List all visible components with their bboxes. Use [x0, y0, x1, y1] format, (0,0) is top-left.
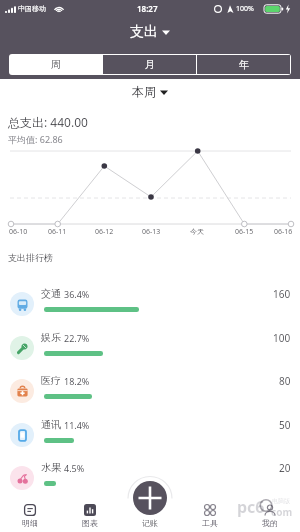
- staticText: 周: [51, 58, 61, 71]
- staticText: 4.5%: [64, 462, 85, 474]
- staticText: com: [271, 505, 293, 519]
- button[interactable]: 月: [103, 55, 196, 74]
- staticText: 11.4%: [64, 419, 90, 431]
- staticText: 水果: [41, 461, 61, 474]
- button[interactable]: 医疗: [0, 370, 300, 413]
- staticText: 06-12: [95, 227, 114, 237]
- staticText: 18.2%: [64, 375, 90, 387]
- staticText: 记账: [142, 518, 158, 528]
- staticText: 80: [279, 374, 291, 388]
- button[interactable]: 我的: [250, 498, 290, 530]
- staticText: 18:27: [137, 3, 158, 14]
- staticText: 月: [145, 58, 155, 71]
- staticText: 工具: [202, 518, 218, 528]
- staticText: 支出: [130, 23, 158, 41]
- button[interactable]: 水果: [0, 457, 300, 500]
- staticText: 20: [279, 461, 291, 475]
- staticText: 06-11: [48, 227, 67, 237]
- staticText: 100: [273, 331, 291, 345]
- button[interactable]: 年: [197, 55, 290, 74]
- staticText: 100%: [236, 4, 254, 14]
- button[interactable]: 工具: [190, 498, 230, 530]
- staticText: 娱乐: [41, 331, 61, 344]
- button[interactable]: 娱乐: [0, 327, 300, 370]
- staticText: pc6: [237, 496, 265, 518]
- staticText: 36.4%: [64, 288, 90, 300]
- staticText: 医疗: [41, 374, 61, 387]
- staticText: 06-16: [274, 227, 293, 237]
- staticText: 图表: [82, 518, 98, 528]
- staticText: 中国移动: [18, 4, 46, 13]
- staticText: 06-15: [235, 227, 254, 237]
- button[interactable]: 周: [10, 55, 102, 74]
- staticText: 今天: [190, 227, 204, 236]
- staticText: 总支出: 440.00: [8, 114, 88, 130]
- staticText: 电脑版: [272, 497, 290, 505]
- button[interactable]: 交通: [0, 283, 300, 326]
- staticText: 50: [279, 418, 291, 432]
- staticText: 本周: [132, 84, 156, 99]
- staticText: 22.7%: [64, 332, 90, 344]
- staticText: 年: [239, 58, 249, 71]
- staticText: 交通: [41, 287, 61, 300]
- staticText: 平均值: 62.86: [8, 133, 63, 145]
- staticText: 160: [273, 287, 291, 301]
- staticText: 我的: [262, 518, 278, 528]
- button[interactable]: [133, 481, 167, 515]
- button[interactable]: 明细: [10, 498, 50, 530]
- button[interactable]: 本周: [110, 82, 190, 100]
- button[interactable]: 通讯: [0, 414, 300, 457]
- staticText: 支出排行榜: [8, 252, 53, 263]
- staticText: 06-10: [9, 227, 28, 237]
- button[interactable]: 图表: [70, 498, 110, 530]
- staticText: 通讯: [41, 418, 61, 431]
- staticText: 06-13: [142, 227, 161, 237]
- staticText: 明细: [22, 518, 38, 528]
- button[interactable]: 支出: [110, 22, 190, 42]
